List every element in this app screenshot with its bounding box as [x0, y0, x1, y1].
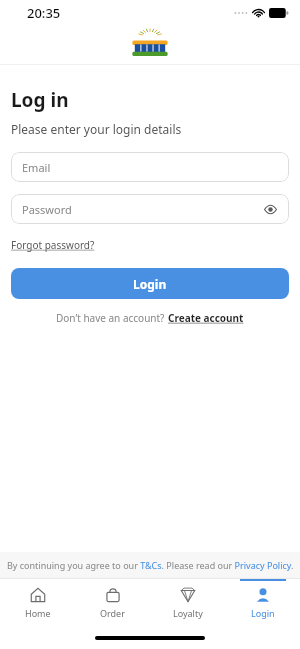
staticText: Home: [25, 607, 51, 619]
staticText: Password: [22, 202, 72, 217]
staticText: Order: [100, 607, 125, 619]
staticText: Forgot password?: [11, 238, 95, 252]
button[interactable]: Home: [0, 579, 75, 627]
button[interactable]: Show password: [261, 200, 279, 218]
button[interactable]: Order: [75, 579, 150, 627]
staticText: Email: [22, 160, 51, 175]
staticText: Login: [251, 607, 275, 619]
staticText: By continuing you agree to our T&Cs. Ple…: [7, 559, 294, 571]
staticText: 20:35: [27, 4, 61, 22]
button[interactable]: Login: [225, 579, 300, 627]
button[interactable]: Forgot password?: [11, 236, 95, 254]
staticText: Please enter your login details: [11, 121, 182, 137]
staticText: Loyalty: [173, 607, 203, 619]
button[interactable]: Email: [11, 152, 289, 182]
button[interactable]: Loyalty: [150, 579, 225, 627]
staticText: Don’t have an account?: [56, 311, 168, 325]
button[interactable]: Login: [11, 268, 289, 299]
staticText: Log in: [11, 87, 69, 113]
staticText: Login: [133, 276, 167, 292]
button[interactable]: Create account: [168, 311, 244, 325]
button[interactable]: Password: [11, 194, 289, 224]
staticText: Create account: [168, 311, 244, 325]
